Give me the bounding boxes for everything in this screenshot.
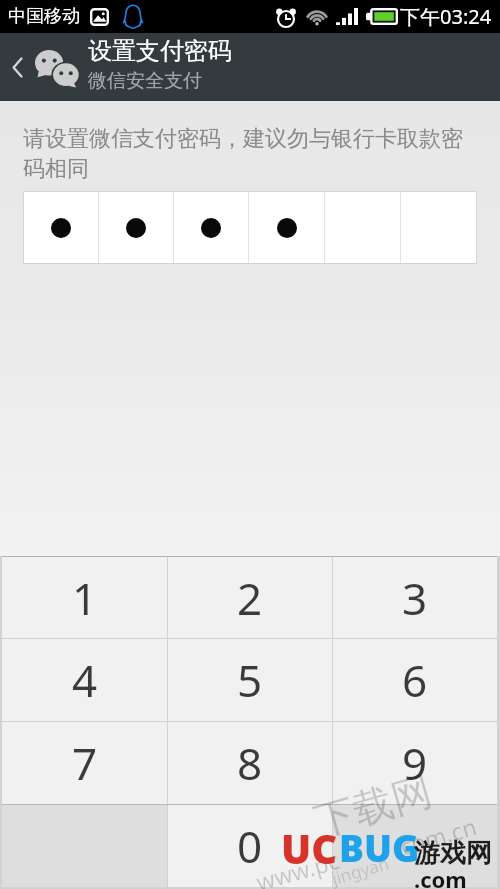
button[interactable]: 0 [168, 805, 332, 887]
staticText: 设置支付密码 [88, 36, 232, 66]
staticText: 1 [72, 568, 98, 628]
staticText: UC [281, 821, 338, 875]
staticText: 下载网 [308, 765, 437, 846]
button[interactable]: 7 [2, 722, 167, 804]
button[interactable]: 8 [168, 722, 332, 804]
staticText: 下午03:24 [400, 3, 492, 30]
button[interactable]: 1 [2, 557, 167, 638]
button[interactable]: 6 [333, 639, 497, 721]
staticText: 请设置微信支付密码，建议勿与银行卡取款密码相同 [23, 125, 480, 183]
staticText: 5 [237, 650, 263, 710]
button[interactable]: 9 [333, 722, 497, 804]
staticText: www.pc [252, 844, 343, 889]
button[interactable]: 3 [333, 557, 497, 638]
staticText: BUG [339, 822, 420, 872]
staticText: 0 [237, 816, 263, 876]
staticText: 8 [237, 733, 263, 793]
staticText: .com.cn [390, 810, 481, 863]
staticText: .com [414, 864, 467, 889]
staticText: 6 [402, 650, 428, 710]
button[interactable]: Back [0, 33, 35, 101]
staticText: 游戏网 [414, 837, 492, 870]
staticText: 7 [72, 733, 98, 793]
button[interactable] [249, 192, 324, 263]
staticText: 4 [72, 650, 98, 710]
button[interactable]: 5 [168, 639, 332, 721]
button[interactable]: Delete [333, 805, 497, 887]
staticText: jingyan [329, 851, 392, 889]
staticText: 2 [237, 568, 263, 628]
button[interactable] [99, 192, 173, 263]
button[interactable]: 2 [168, 557, 332, 638]
button[interactable]: 4 [2, 639, 167, 721]
staticText: 微信安全支付 [88, 69, 202, 93]
staticText: 9 [402, 733, 428, 793]
button[interactable] [24, 192, 98, 263]
staticText: 3 [402, 568, 428, 628]
staticText: 中国移动 [8, 5, 80, 28]
button[interactable] [174, 192, 248, 263]
